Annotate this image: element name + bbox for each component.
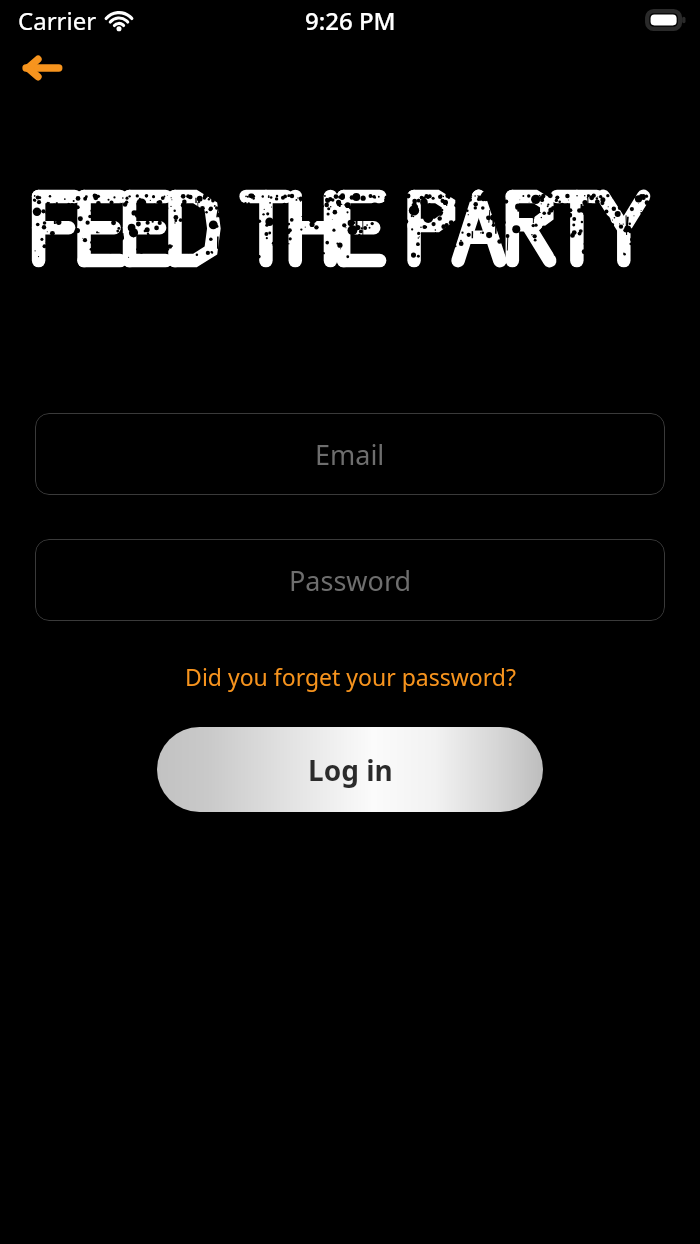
staticText: Log in <box>308 751 393 789</box>
button[interactable]: Log in <box>157 727 543 812</box>
staticText: 9:26 PM <box>305 4 396 37</box>
staticText: Password <box>289 562 412 599</box>
button[interactable]: Email <box>35 413 665 495</box>
button[interactable]: Password <box>35 539 665 621</box>
staticText: Carrier <box>18 4 97 37</box>
button[interactable]: Back <box>12 44 72 92</box>
staticText: Did you forget your password? <box>185 661 516 692</box>
button[interactable]: Did you forget your password? <box>177 657 524 696</box>
staticText: Email <box>315 436 385 473</box>
